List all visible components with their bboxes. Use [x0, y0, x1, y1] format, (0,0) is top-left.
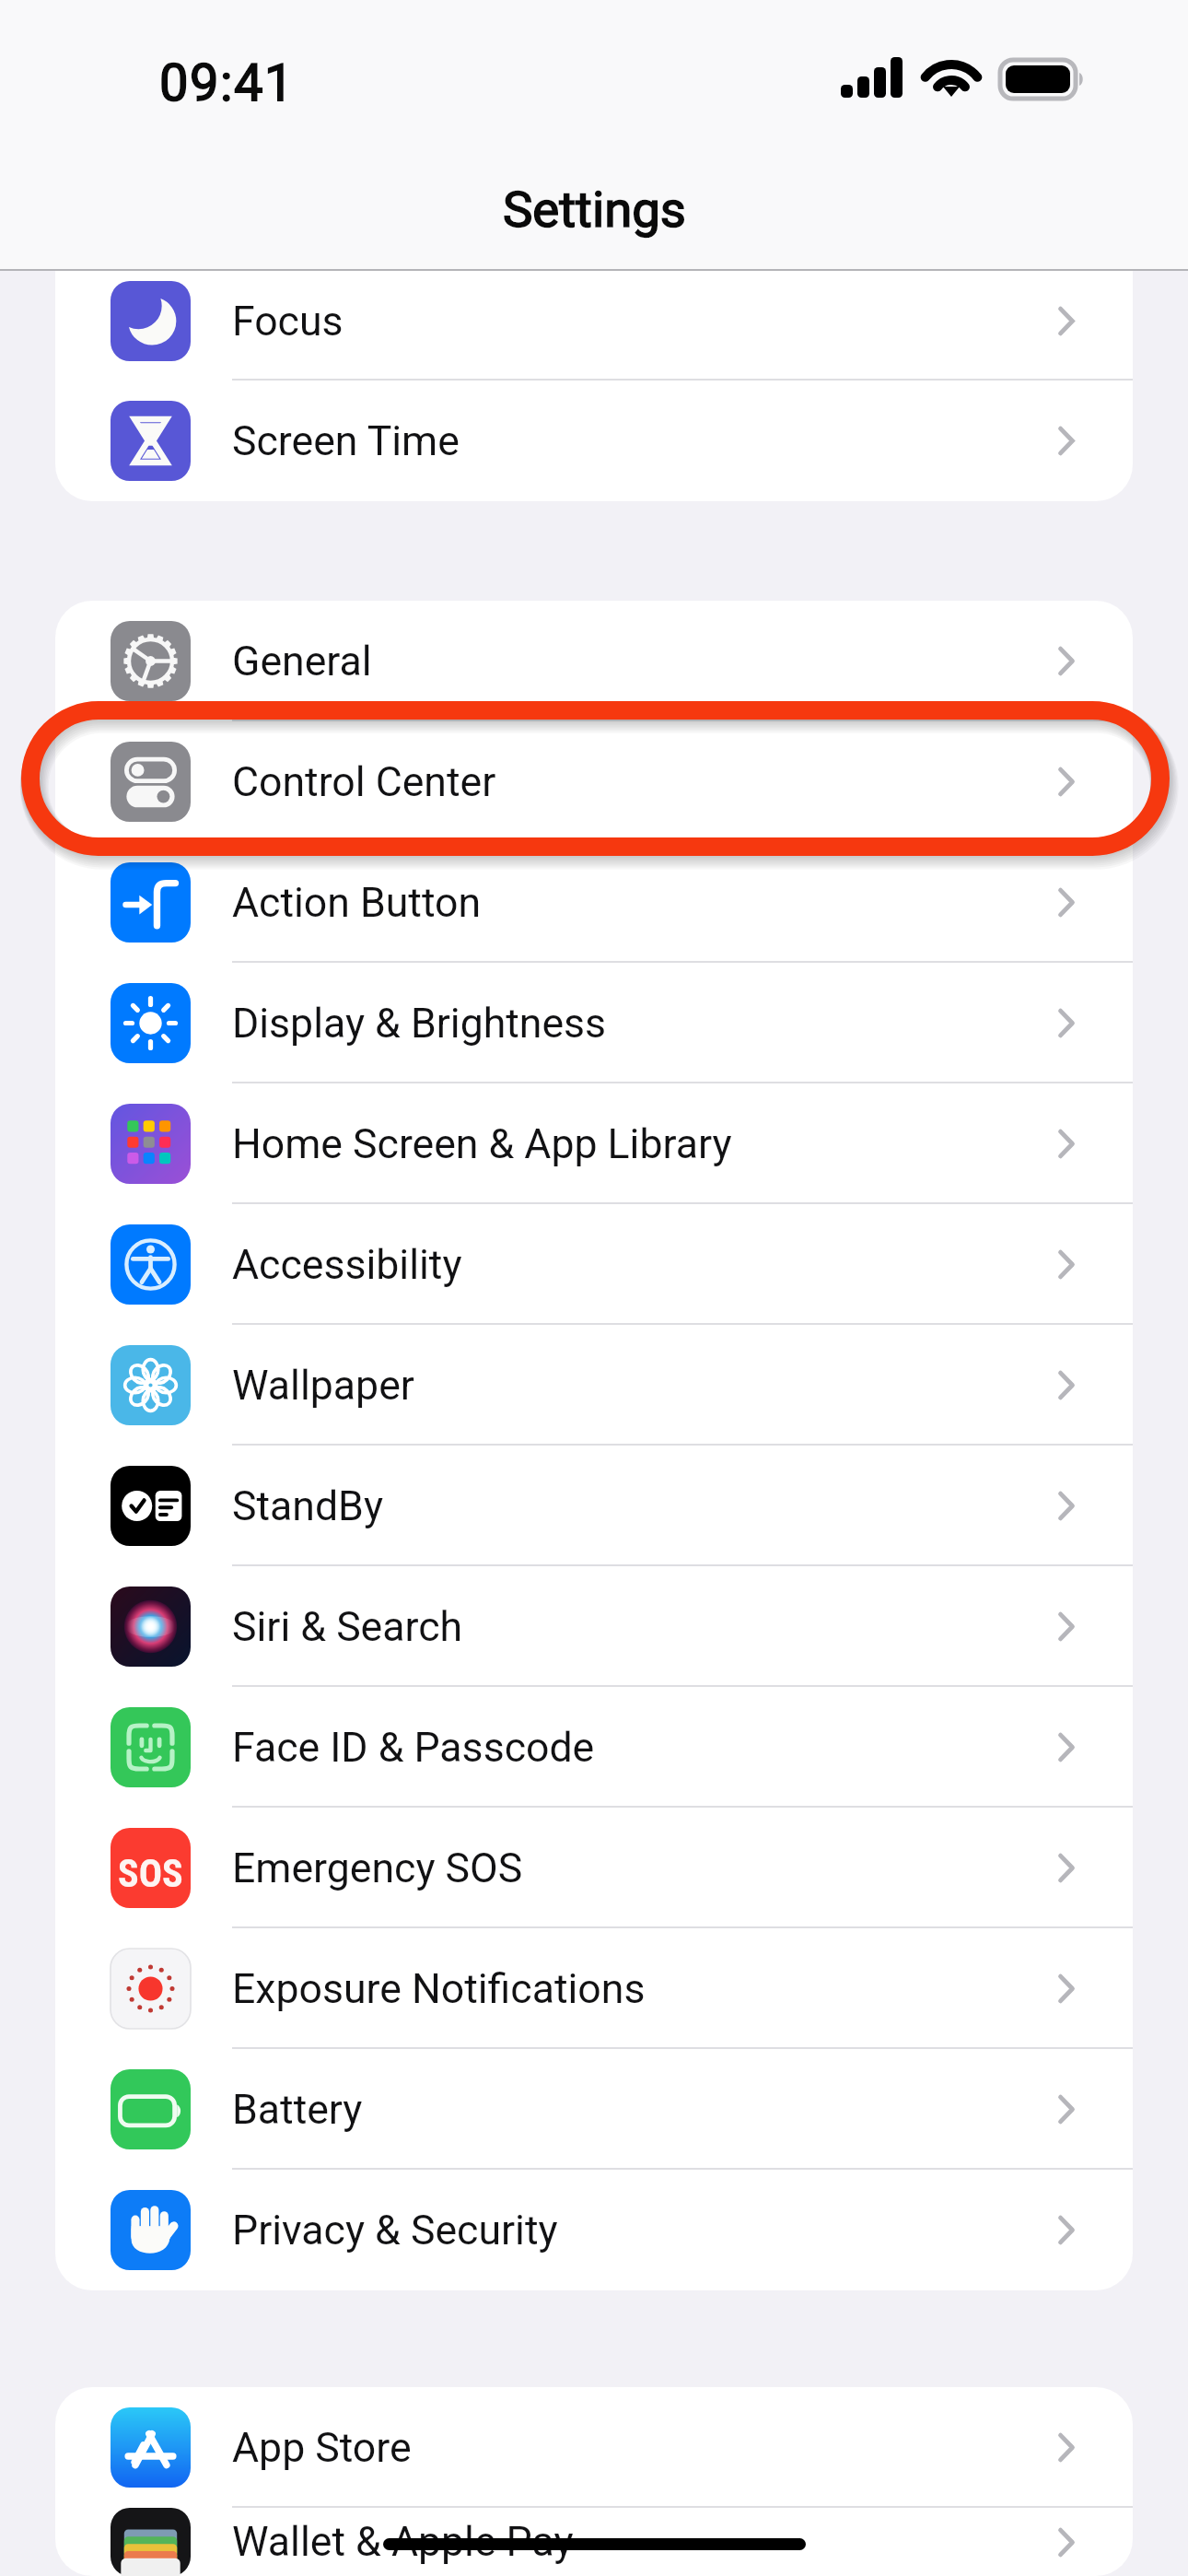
- staticText: Display & Brightness: [232, 1000, 607, 1048]
- button[interactable]: SOS: [55, 1808, 1133, 1928]
- staticText: Home Screen & App Library: [232, 1120, 732, 1168]
- staticText: Wallpaper: [232, 1362, 414, 1410]
- staticText: 09:41: [159, 53, 295, 113]
- button[interactable]: Control Center: [55, 721, 1133, 842]
- staticText: Battery: [232, 2086, 363, 2134]
- button[interactable]: Display & Brightness: [55, 963, 1133, 1083]
- staticText: App Store: [232, 2424, 412, 2472]
- staticText: Face ID & Passcode: [232, 1724, 595, 1772]
- staticText: SOS: [118, 1851, 183, 1896]
- button[interactable]: Face ID & Passcode: [55, 1687, 1133, 1808]
- staticText: Control Center: [232, 758, 496, 806]
- button[interactable]: Exposure Notifications: [55, 1928, 1133, 2049]
- staticText: Settings: [503, 180, 686, 239]
- button[interactable]: Siri & Search: [55, 1566, 1133, 1687]
- button[interactable]: Privacy & Security: [55, 2170, 1133, 2290]
- button[interactable]: General: [55, 601, 1133, 721]
- button[interactable]: Wallpaper: [55, 1325, 1133, 1446]
- button[interactable]: Focus: [55, 271, 1133, 381]
- button[interactable]: Battery: [55, 2049, 1133, 2170]
- staticText: Action Button: [232, 879, 482, 927]
- staticText: Accessibility: [232, 1241, 462, 1289]
- staticText: Screen Time: [232, 417, 460, 465]
- staticText: Siri & Search: [232, 1603, 463, 1651]
- staticText: Privacy & Security: [232, 2207, 558, 2254]
- staticText: Exposure Notifications: [232, 1965, 646, 2013]
- staticText: Emergency SOS: [232, 1844, 523, 1892]
- button[interactable]: Screen Time: [55, 381, 1133, 501]
- staticText: StandBy: [232, 1482, 383, 1530]
- staticText: Wallet & Apple Pay: [232, 2518, 574, 2566]
- button[interactable]: Accessibility: [55, 1204, 1133, 1325]
- button[interactable]: Wallet & Apple Pay: [55, 2508, 1133, 2576]
- staticText: Focus: [232, 298, 344, 345]
- button[interactable]: Action Button: [55, 842, 1133, 963]
- button[interactable]: App Store: [55, 2387, 1133, 2508]
- button[interactable]: Home Screen & App Library: [55, 1083, 1133, 1204]
- button[interactable]: StandBy: [55, 1446, 1133, 1566]
- staticText: General: [232, 638, 372, 685]
